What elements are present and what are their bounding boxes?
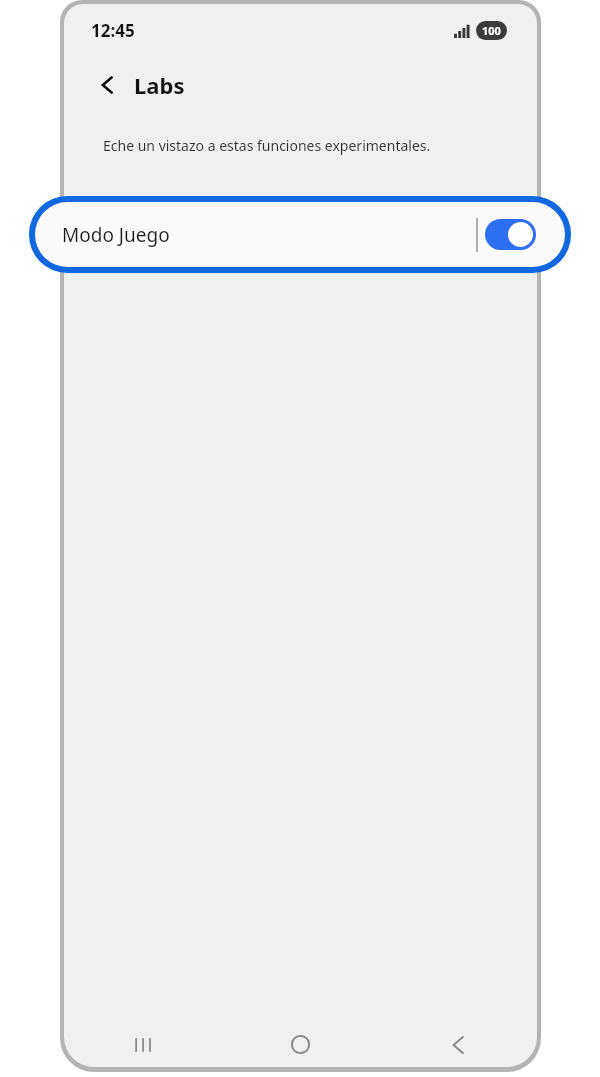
button[interactable]: Modo Juego toggle, on	[485, 219, 536, 250]
button[interactable]: Back	[433, 1022, 483, 1067]
staticText: Modo Juego	[62, 222, 170, 248]
button[interactable]: Home	[275, 1022, 325, 1067]
button[interactable]: Recents	[118, 1022, 168, 1067]
staticText: Labs	[134, 70, 185, 100]
staticText: 100	[482, 23, 501, 38]
staticText: 12:45	[91, 19, 135, 42]
button[interactable]: Back	[90, 67, 126, 103]
button[interactable]: Modo Juego	[29, 196, 571, 273]
staticText: Eche un vistazo a estas funciones experi…	[103, 136, 431, 155]
